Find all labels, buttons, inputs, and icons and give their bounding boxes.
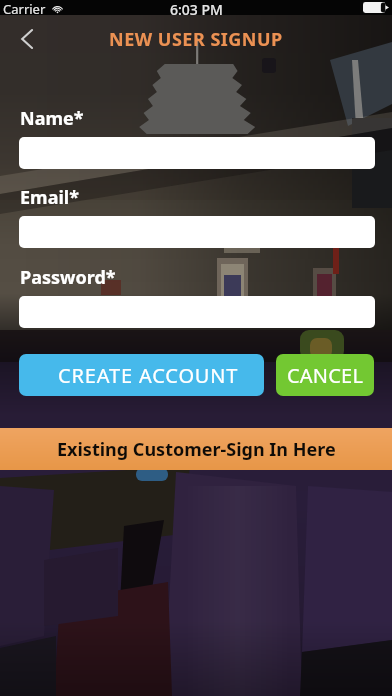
button[interactable]	[19, 296, 375, 328]
staticText: Name*	[20, 106, 84, 131]
staticText: 6:03 PM	[170, 0, 223, 15]
button[interactable]: Existing Customer-Sign In Here	[0, 428, 392, 470]
staticText: NEW USER SIGNUP	[109, 27, 283, 52]
staticText: Existing Customer-Sign In Here	[57, 437, 336, 462]
staticText: Email*	[20, 185, 79, 210]
button[interactable]: Back	[8, 20, 46, 58]
button[interactable]	[19, 137, 375, 169]
button[interactable]: CANCEL	[276, 354, 374, 396]
staticText: CREATE ACCOUNT	[58, 362, 239, 389]
staticText: Carrier	[3, 0, 46, 15]
staticText: CANCEL	[287, 362, 364, 389]
staticText: Password*	[20, 265, 116, 290]
button[interactable]	[19, 216, 375, 248]
button[interactable]: CREATE ACCOUNT	[19, 354, 264, 396]
